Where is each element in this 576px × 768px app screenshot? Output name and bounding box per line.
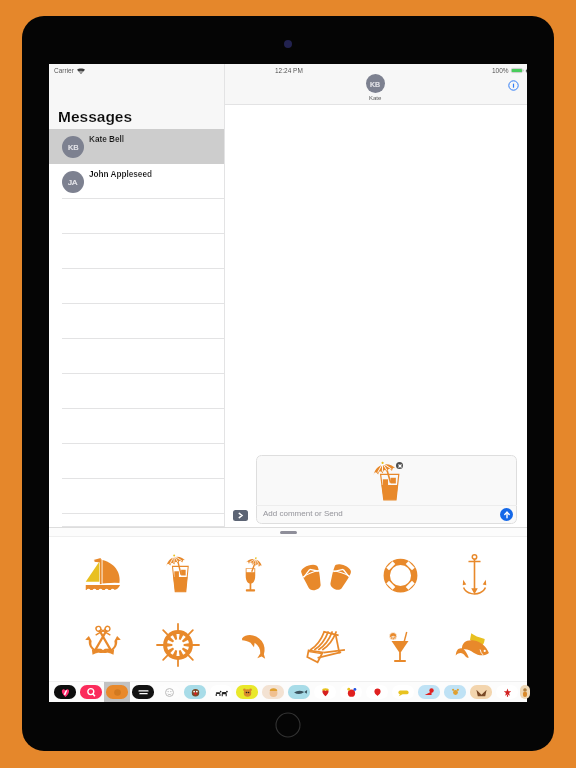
button[interactable]: Life ring — [363, 537, 437, 609]
button[interactable]: Tropical drink — [140, 537, 215, 609]
button[interactable]: Remove sticker — [396, 462, 403, 469]
button[interactable]: Deck chair — [289, 609, 363, 681]
button[interactable]: Sticker pack — [286, 682, 312, 702]
button[interactable]: Sticker pack — [338, 682, 364, 702]
staticText: 100% — [492, 67, 509, 74]
button[interactable]: JA — [49, 164, 224, 199]
button[interactable]: Flip flops — [289, 537, 363, 609]
button[interactable] — [49, 339, 224, 374]
button[interactable] — [49, 479, 224, 514]
button[interactable] — [49, 514, 224, 527]
button[interactable] — [49, 444, 224, 479]
button[interactable]: Tropical drink sticker — [372, 462, 402, 500]
staticText: Kate — [369, 95, 382, 102]
button[interactable]: Crossed anchors — [65, 609, 140, 681]
button[interactable]: Sticker pack — [234, 682, 260, 702]
button[interactable]: Sticker pack — [104, 682, 130, 702]
button[interactable]: Cocktail — [215, 537, 289, 609]
button[interactable] — [49, 199, 224, 234]
button[interactable]: Martini — [363, 609, 437, 681]
staticText: Add comment or Send — [263, 509, 343, 518]
button[interactable]: Expand apps — [233, 510, 248, 521]
button[interactable]: Sailboat — [65, 537, 140, 609]
button[interactable]: Sticker pack — [520, 682, 530, 702]
button[interactable] — [49, 409, 224, 444]
staticText: Carrier — [54, 67, 74, 74]
button[interactable]: Dolphin — [215, 609, 289, 681]
button[interactable]: Sticker pack — [52, 682, 78, 702]
staticText: 12:24 PM — [275, 67, 303, 74]
button[interactable]: Sticker pack — [156, 682, 182, 702]
button[interactable]: Sticker pack — [312, 682, 338, 702]
button[interactable] — [49, 234, 224, 269]
staticText: Kate Bell — [89, 135, 125, 144]
button[interactable]: Sticker pack — [442, 682, 468, 702]
button[interactable]: Sticker pack — [364, 682, 390, 702]
button[interactable]: Sticker pack — [208, 682, 234, 702]
button[interactable]: Sticker pack — [182, 682, 208, 702]
button[interactable]: KB — [366, 74, 385, 102]
staticText: John Appleseed — [89, 170, 152, 179]
button[interactable]: Fish — [437, 609, 511, 681]
button[interactable]: Ship wheel — [140, 609, 215, 681]
staticText: KB — [68, 143, 79, 152]
button[interactable]: Anchor — [437, 537, 511, 609]
button[interactable]: KB — [49, 129, 224, 164]
button[interactable] — [49, 269, 224, 304]
button[interactable] — [49, 304, 224, 339]
button[interactable]: Sticker pack — [390, 682, 416, 702]
staticText: KB — [370, 80, 381, 88]
button[interactable]: Sticker pack — [468, 682, 494, 702]
button[interactable]: Sticker pack — [78, 682, 104, 702]
button[interactable]: Sticker pack — [130, 682, 156, 702]
button[interactable]: Send — [500, 508, 513, 521]
staticText: JA — [68, 178, 78, 187]
button[interactable]: Sticker pack — [416, 682, 442, 702]
button[interactable]: Sticker pack — [494, 682, 520, 702]
staticText: Messages — [58, 108, 133, 125]
button[interactable]: Sticker pack — [260, 682, 286, 702]
button[interactable] — [49, 374, 224, 409]
button[interactable]: Info — [508, 80, 519, 91]
